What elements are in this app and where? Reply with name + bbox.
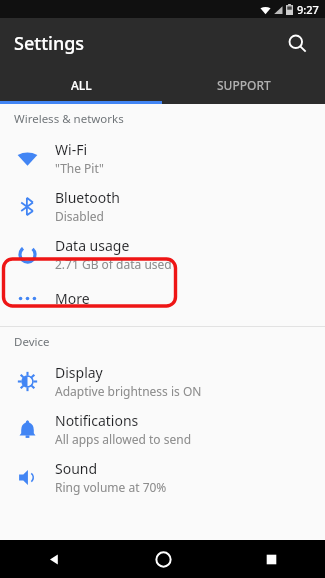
button[interactable]: SUPPORT — [162, 68, 325, 101]
other: Display — [17, 371, 38, 392]
button[interactable]: Wi-Fi settings — [0, 134, 325, 182]
staticText: Wi-Fi — [55, 140, 88, 159]
staticText: Adaptive brightness is ON — [55, 383, 202, 399]
staticText: Notifications — [55, 411, 139, 430]
staticText: Data usage — [55, 236, 130, 255]
button[interactable]: Notifications — [0, 405, 325, 453]
button[interactable]: Bluetooth settings — [0, 182, 325, 230]
button[interactable]: Data usage — [0, 230, 325, 278]
other: Sound — [17, 467, 38, 488]
staticText: Device — [14, 334, 50, 350]
button[interactable]: Back — [0, 540, 109, 578]
staticText: ALL — [71, 77, 92, 93]
other: Bluetooth settings — [17, 196, 38, 217]
other: Notifications — [17, 419, 38, 440]
staticText: Sound — [55, 459, 98, 478]
staticText: Settings — [14, 31, 85, 56]
button[interactable]: ALL — [0, 68, 162, 101]
button[interactable]: More settings — [0, 278, 325, 319]
staticText: SUPPORT — [217, 77, 271, 93]
staticText: Wireless & networks — [14, 111, 124, 127]
button[interactable]: Sound — [0, 453, 325, 501]
other: More settings — [17, 288, 38, 309]
button[interactable]: Home — [109, 540, 217, 578]
staticText: Ring volume at 70% — [55, 479, 167, 495]
staticText: "The Pit" — [55, 160, 104, 176]
button[interactable]: Recent apps — [217, 540, 325, 578]
staticText: 2.71 GB of data used — [55, 256, 172, 272]
button[interactable]: Display — [0, 357, 325, 405]
other: Data usage — [17, 244, 38, 265]
staticText: More — [55, 289, 90, 308]
staticText: All apps allowed to send — [55, 431, 192, 447]
staticText: Bluetooth — [55, 188, 120, 207]
button[interactable]: Search — [277, 23, 317, 63]
staticText: Disabled — [55, 208, 104, 224]
other: Wi-Fi settings — [17, 148, 38, 169]
staticText: 9:27 — [297, 2, 319, 17]
staticText: Display — [55, 363, 103, 382]
